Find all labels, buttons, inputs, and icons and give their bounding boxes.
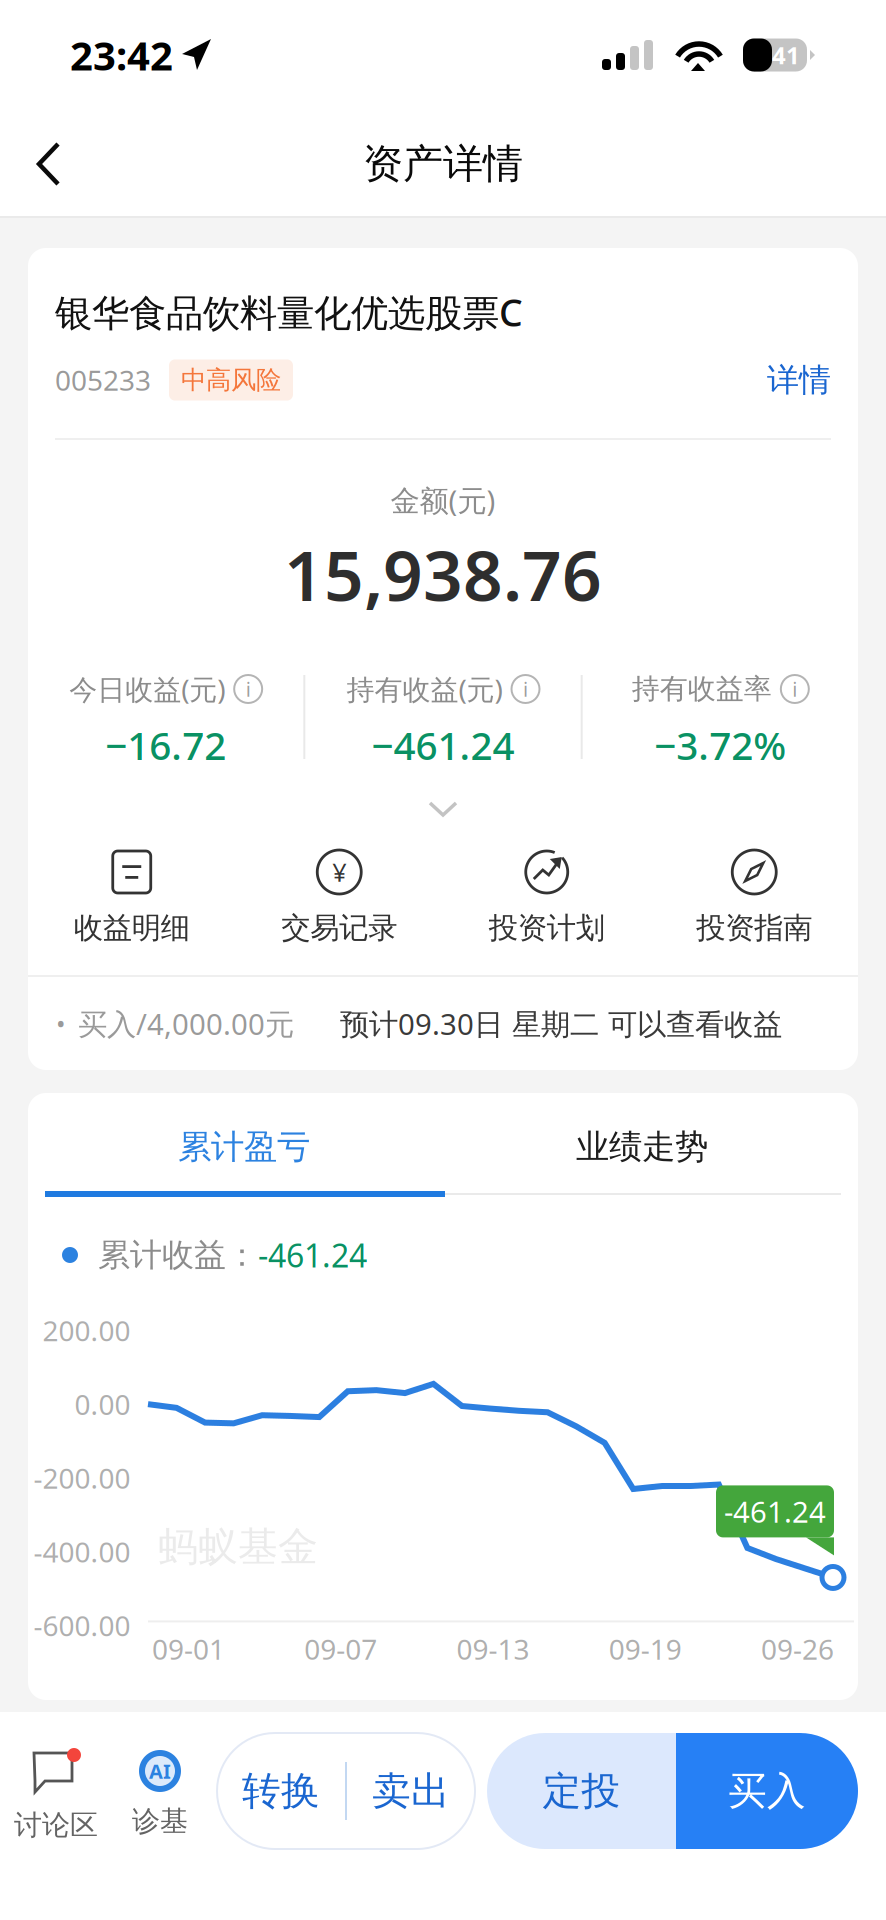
staticText: • <box>56 1007 66 1040</box>
button[interactable]: 卖出 <box>347 1733 475 1849</box>
staticText: 交易记录 <box>281 910 397 946</box>
staticText: 收益明细 <box>74 910 190 946</box>
staticText: AI <box>149 1758 171 1784</box>
staticText: 买入 <box>728 1767 806 1815</box>
staticText: 投资计划 <box>489 910 605 946</box>
staticText: -461.24 <box>724 1492 826 1531</box>
button[interactable]: AI <box>108 1712 212 1920</box>
staticText: 详情 <box>767 360 831 400</box>
staticText: 09-26 <box>761 1630 834 1668</box>
staticText: 09-13 <box>456 1630 529 1668</box>
staticText: -400.00 <box>33 1533 130 1570</box>
staticText: 银华食品饮料量化优选股票C <box>55 287 523 337</box>
staticText: 累计盈亏 <box>178 1126 310 1167</box>
staticText: 诊基 <box>132 1804 188 1838</box>
staticText: 15,938.76 <box>284 528 602 620</box>
button[interactable]: 业绩走势 <box>443 1097 841 1197</box>
staticText: 资产详情 <box>363 139 523 188</box>
staticText: i <box>792 676 797 702</box>
staticText: 金额(元) <box>390 480 495 519</box>
staticText: -461.24 <box>258 1234 367 1276</box>
button[interactable]: ¥ <box>235 843 443 961</box>
staticText: 蚂蚁基金 <box>158 1522 318 1571</box>
staticText: 09-19 <box>609 1630 682 1668</box>
staticText: 今日收益(元) <box>69 670 225 708</box>
staticText: ¥ <box>332 855 346 889</box>
staticText: 23:42 <box>70 28 173 81</box>
staticText: 卖出 <box>372 1767 450 1815</box>
staticText: 持有收益(元) <box>346 670 502 708</box>
staticText: 中高风险 <box>181 364 281 395</box>
button[interactable]: 买入 <box>676 1733 858 1849</box>
staticText: 41 <box>772 39 800 71</box>
staticText: i <box>523 676 528 702</box>
staticText: 转换 <box>242 1767 320 1815</box>
staticText: 累计收益： <box>98 1235 258 1275</box>
staticText: 09-07 <box>304 1630 377 1668</box>
staticText: −16.72 <box>105 719 226 771</box>
staticText: 持有收益率 <box>632 672 772 706</box>
button[interactable]: 累计盈亏 <box>45 1097 443 1197</box>
staticText: 预计09.30日 星期二 可以查看收益 <box>340 1004 782 1043</box>
button[interactable]: 讨论区 <box>4 1712 108 1920</box>
staticText: −461.24 <box>371 719 514 771</box>
staticText: i <box>246 676 251 702</box>
staticText: −3.72% <box>654 719 786 771</box>
staticText: 09-01 <box>152 1630 225 1668</box>
staticText: 讨论区 <box>14 1808 98 1842</box>
staticText: 业绩走势 <box>576 1126 708 1167</box>
staticText: 200.00 <box>42 1312 130 1349</box>
staticText: 投资指南 <box>696 910 812 946</box>
staticText: 0.00 <box>74 1386 130 1423</box>
staticText: -600.00 <box>33 1607 130 1644</box>
button[interactable]: 投资指南 <box>650 843 858 961</box>
staticText: 005233 <box>55 361 151 399</box>
button[interactable]: 投资计划 <box>443 843 650 961</box>
button[interactable]: Back <box>0 112 92 216</box>
button[interactable]: 转换 <box>217 1733 345 1849</box>
staticText: -200.00 <box>33 1459 130 1496</box>
button[interactable]: 详情 <box>767 360 831 400</box>
button[interactable]: Expand <box>383 777 503 843</box>
button[interactable]: 收益明细 <box>28 843 235 961</box>
staticText: 定投 <box>542 1767 620 1815</box>
staticText: 买入/4,000.00元 <box>78 1004 294 1043</box>
button[interactable]: 定投 <box>487 1733 676 1849</box>
